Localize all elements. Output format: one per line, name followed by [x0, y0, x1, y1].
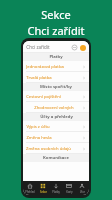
staticText: Přehled — [25, 190, 35, 194]
staticText: Změna osobních údajů — [26, 146, 71, 152]
staticText: Platby — [49, 54, 63, 60]
staticText: Cestovní pojištění — [26, 94, 61, 100]
button[interactable]: Změna hesla — [23, 132, 89, 143]
button[interactable]: Platby — [50, 183, 62, 194]
staticText: Chci zařídit — [27, 23, 85, 38]
button[interactable]: Změna osobních údajů — [23, 143, 89, 154]
staticText: Změna hesla — [26, 135, 52, 141]
staticText: Chci zařídit — [26, 44, 50, 50]
staticText: Účty a přehledy — [40, 114, 73, 120]
staticText: Trvalá platba — [26, 75, 52, 81]
staticText: Více — [80, 190, 85, 194]
staticText: Sekce — [41, 7, 71, 22]
button[interactable]: Přehled — [24, 183, 36, 194]
staticText: Platby — [52, 190, 60, 194]
staticText: Jednorázová platba — [26, 64, 64, 70]
button[interactable]: Karty — [63, 183, 75, 194]
button[interactable]: Výpis z účtu — [23, 121, 89, 132]
button[interactable]: Jednorázová platba — [23, 61, 89, 72]
button[interactable]: Více — [76, 183, 88, 194]
staticText: Výpis z účtu — [26, 124, 50, 130]
staticText: Komunikace — [43, 155, 69, 161]
staticText: Místo spořit/by — [40, 84, 72, 90]
button[interactable]: Nastavení — [71, 44, 78, 51]
button[interactable]: Sekce — [37, 183, 49, 194]
staticText: Zhodnocení volných prostředků — [26, 105, 82, 111]
staticText: Sekce — [40, 190, 47, 194]
button[interactable]: Cestovní pojištění — [23, 91, 89, 102]
staticText: Karty — [66, 190, 73, 194]
button[interactable]: Profil — [79, 44, 86, 51]
button[interactable]: Zhodnocení volných prostředků — [23, 102, 89, 113]
button[interactable]: Trvalá platba — [23, 72, 89, 83]
